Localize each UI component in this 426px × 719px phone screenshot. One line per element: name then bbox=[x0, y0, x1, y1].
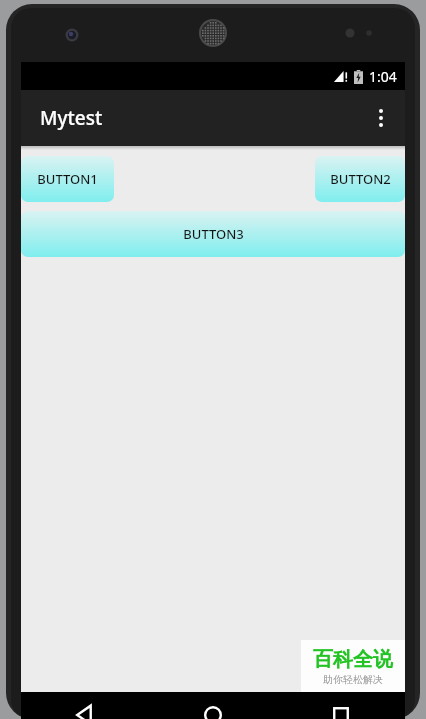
staticText: 百科全说 bbox=[313, 647, 393, 672]
staticText: BUTTON1 bbox=[37, 170, 98, 188]
staticText: 助你轻松解决 bbox=[323, 673, 383, 686]
staticText: BUTTON3 bbox=[183, 225, 244, 243]
button[interactable]: Recent apps bbox=[277, 692, 405, 719]
button[interactable]: BUTTON1 bbox=[21, 156, 114, 202]
staticText: BUTTON2 bbox=[330, 170, 391, 188]
staticText: 1:04 bbox=[369, 67, 397, 86]
button[interactable]: More options bbox=[357, 94, 405, 142]
button[interactable]: Home bbox=[149, 692, 277, 719]
button[interactable]: Back bbox=[21, 692, 149, 719]
button[interactable]: BUTTON3 bbox=[21, 211, 405, 257]
staticText: Mytest bbox=[40, 105, 103, 131]
button[interactable]: BUTTON2 bbox=[315, 156, 405, 202]
